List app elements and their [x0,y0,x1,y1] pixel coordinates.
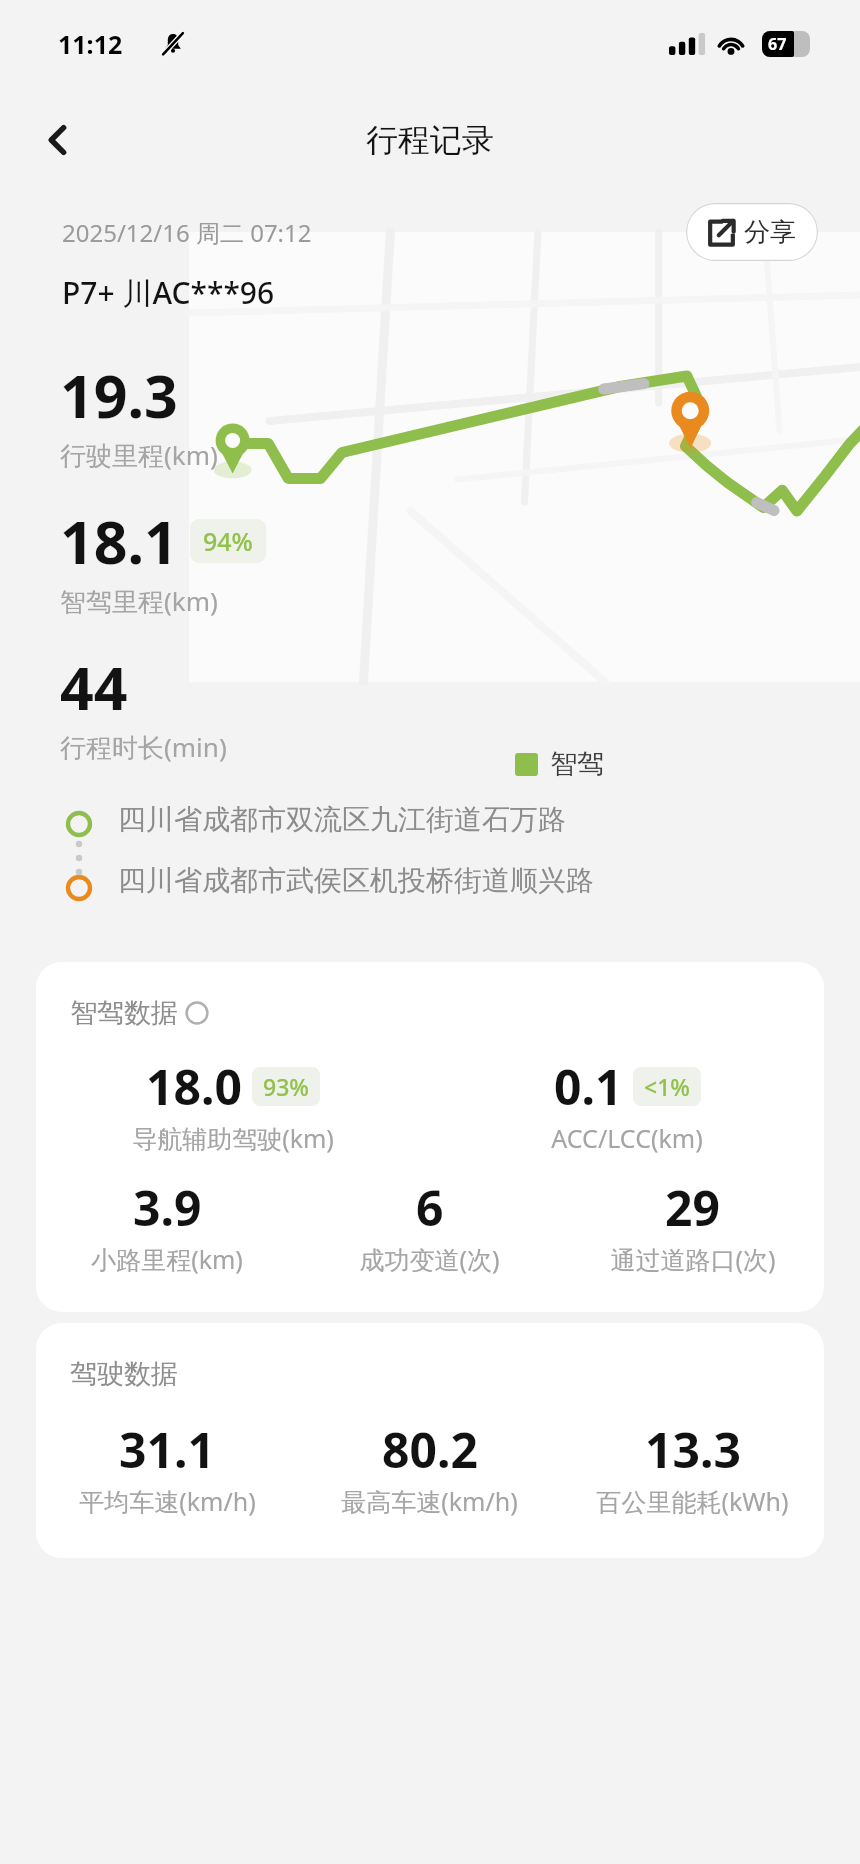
staticText: 平均车速(km/h) [79,1484,256,1518]
staticText: 31.1 [119,1417,215,1482]
staticText: 分享 [744,216,796,249]
staticText: 智驾 [550,747,604,781]
staticText: 18.1 [60,501,178,581]
staticText: 百公里能耗(kWh) [596,1484,789,1518]
staticText: 通过道路口(次) [610,1242,776,1276]
staticText: 智驾里程(km) [60,583,218,619]
staticText: 驾驶数据 [70,1357,178,1391]
staticText: 小路里程(km) [91,1242,243,1276]
button[interactable]: 智驾数据 [36,962,824,1312]
staticText: ACC/LCC(km) [551,1121,703,1155]
staticText: 3.9 [133,1175,202,1240]
staticText: 四川省成都市双流区九江街道石万路 [118,802,566,837]
staticText: 行驶里程(km) [60,437,218,473]
staticText: 四川省成都市武侯区机投桥街道顺兴路 [118,863,594,898]
staticText: 67 [768,33,787,55]
staticText: 11:12 [58,27,123,61]
staticText: 18.0 [146,1054,242,1119]
staticText: 13.3 [645,1417,741,1482]
staticText: 93% [263,1071,309,1102]
staticText: 行程记录 [366,120,494,160]
staticText: <1% [644,1071,690,1102]
button[interactable]: 分享 [686,203,818,261]
staticText: 成功变道(次) [359,1242,500,1276]
staticText: 0.1 [554,1054,623,1119]
staticText: 最高车速(km/h) [341,1484,518,1518]
staticText: 6 [416,1175,444,1240]
staticText: 80.2 [382,1417,478,1482]
staticText: 2025/12/16 周二 07:12 [62,216,312,249]
staticText: 导航辅助驾驶(km) [132,1121,334,1155]
staticText: 19.3 [60,355,178,435]
button[interactable]: 驾驶数据 [36,1323,824,1558]
staticText: 94% [203,524,253,558]
staticText: 行程时长(min) [60,729,227,765]
staticText: P7+ 川AC***96 [62,272,275,313]
button[interactable]: Back [28,110,88,170]
staticText: 29 [665,1175,720,1240]
staticText: 44 [60,647,128,727]
staticText: 智驾数据 [70,996,178,1030]
